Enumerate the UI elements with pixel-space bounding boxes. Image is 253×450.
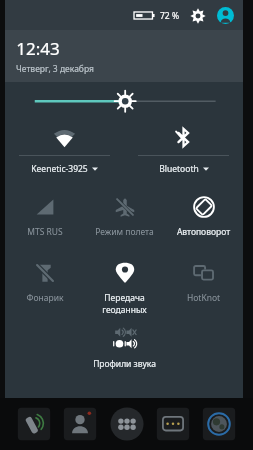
- button[interactable]: Автоповорот: [164, 190, 243, 238]
- button[interactable]: Профили звука: [85, 320, 164, 370]
- button[interactable]: Settings: [190, 8, 206, 24]
- button[interactable]: Contacts: [62, 406, 98, 442]
- staticText: HotKnot: [164, 292, 243, 304]
- staticText: 12:43: [16, 37, 60, 60]
- button[interactable]: 12:43: [5, 30, 243, 82]
- button[interactable]: Передача геоданных: [85, 256, 164, 314]
- button[interactable]: [5, 82, 243, 122]
- staticText: Автоповорот: [164, 226, 243, 238]
- button[interactable]: Messages: [155, 406, 191, 442]
- button[interactable]: MTS RUS: [5, 190, 85, 238]
- staticText: MTS RUS: [5, 226, 85, 238]
- button[interactable]: User profile: [217, 7, 234, 24]
- button[interactable]: Keenetic-3925: [5, 122, 124, 175]
- staticText: Профили звука: [85, 358, 164, 370]
- button[interactable]: Bluetooth: [124, 122, 243, 175]
- staticText: Фонарик: [5, 292, 85, 304]
- staticText: Четверг, 3 декабря: [16, 63, 94, 75]
- staticText: Bluetooth: [159, 163, 199, 175]
- button[interactable]: HotKnot: [164, 256, 243, 304]
- staticText: Режим полета: [85, 226, 164, 238]
- staticText: Keenetic-3925: [31, 163, 88, 175]
- button[interactable]: Режим полета: [85, 190, 164, 238]
- button[interactable]: Browser: [201, 406, 237, 442]
- button[interactable]: Phone: [16, 406, 52, 442]
- button[interactable]: Apps: [109, 406, 145, 442]
- staticText: 72 %: [160, 10, 179, 22]
- staticText: Передача геоданных: [85, 292, 164, 314]
- button[interactable]: Фонарик: [5, 256, 85, 304]
